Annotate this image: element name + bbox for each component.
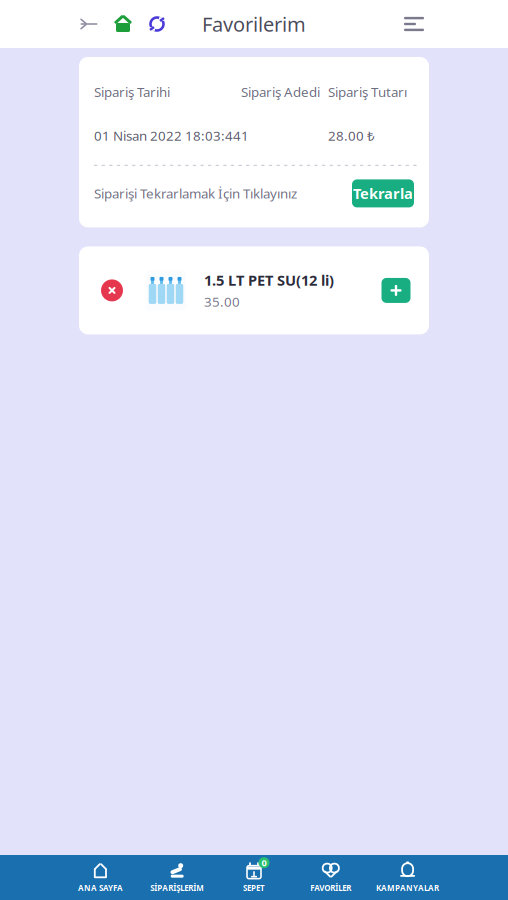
staticText: KAMPANYALAR	[376, 883, 439, 893]
staticText: 1	[241, 127, 249, 144]
staticText: Sipariş Tutarı	[328, 83, 407, 101]
button[interactable]: Ana Sayfa	[106, 7, 140, 41]
button[interactable]: KAMPANYALAR	[369, 855, 446, 900]
button[interactable]: SİPARİŞLERİM	[139, 855, 216, 900]
staticText: Favorilerim	[202, 11, 306, 37]
button[interactable]: Tekrarla	[352, 179, 414, 207]
staticText: 0	[261, 856, 266, 869]
staticText: 01 Nisan 2022 18:03:44	[94, 127, 241, 144]
button[interactable]: Menü	[394, 7, 434, 41]
button[interactable]: Yenile	[140, 7, 174, 41]
staticText: 28.00 ₺	[328, 127, 375, 144]
button[interactable]: Geri	[72, 7, 106, 41]
staticText: SİPARİŞLERİM	[150, 883, 204, 893]
button[interactable]: Favorilerden Kaldır	[92, 270, 132, 310]
button[interactable]: 0	[216, 855, 292, 900]
staticText: Tekrarla	[353, 184, 413, 203]
staticText: FAVORİLER	[310, 883, 351, 893]
staticText: Sipariş Adedi	[241, 83, 320, 101]
button[interactable]: Sepete Ekle	[374, 268, 418, 312]
staticText: 35.00	[204, 293, 240, 310]
button[interactable]: FAVORİLER	[292, 855, 369, 900]
staticText: Siparişi Tekrarlamak İçin Tıklayınız	[94, 185, 297, 202]
button[interactable]: ANA SAYFA	[62, 855, 139, 900]
staticText: Sipariş Tarihi	[94, 83, 170, 101]
staticText: ANA SAYFA	[78, 883, 123, 893]
staticText: 1.5 LT PET SU(12 li)	[204, 270, 334, 290]
staticText: SEPET	[243, 883, 265, 893]
